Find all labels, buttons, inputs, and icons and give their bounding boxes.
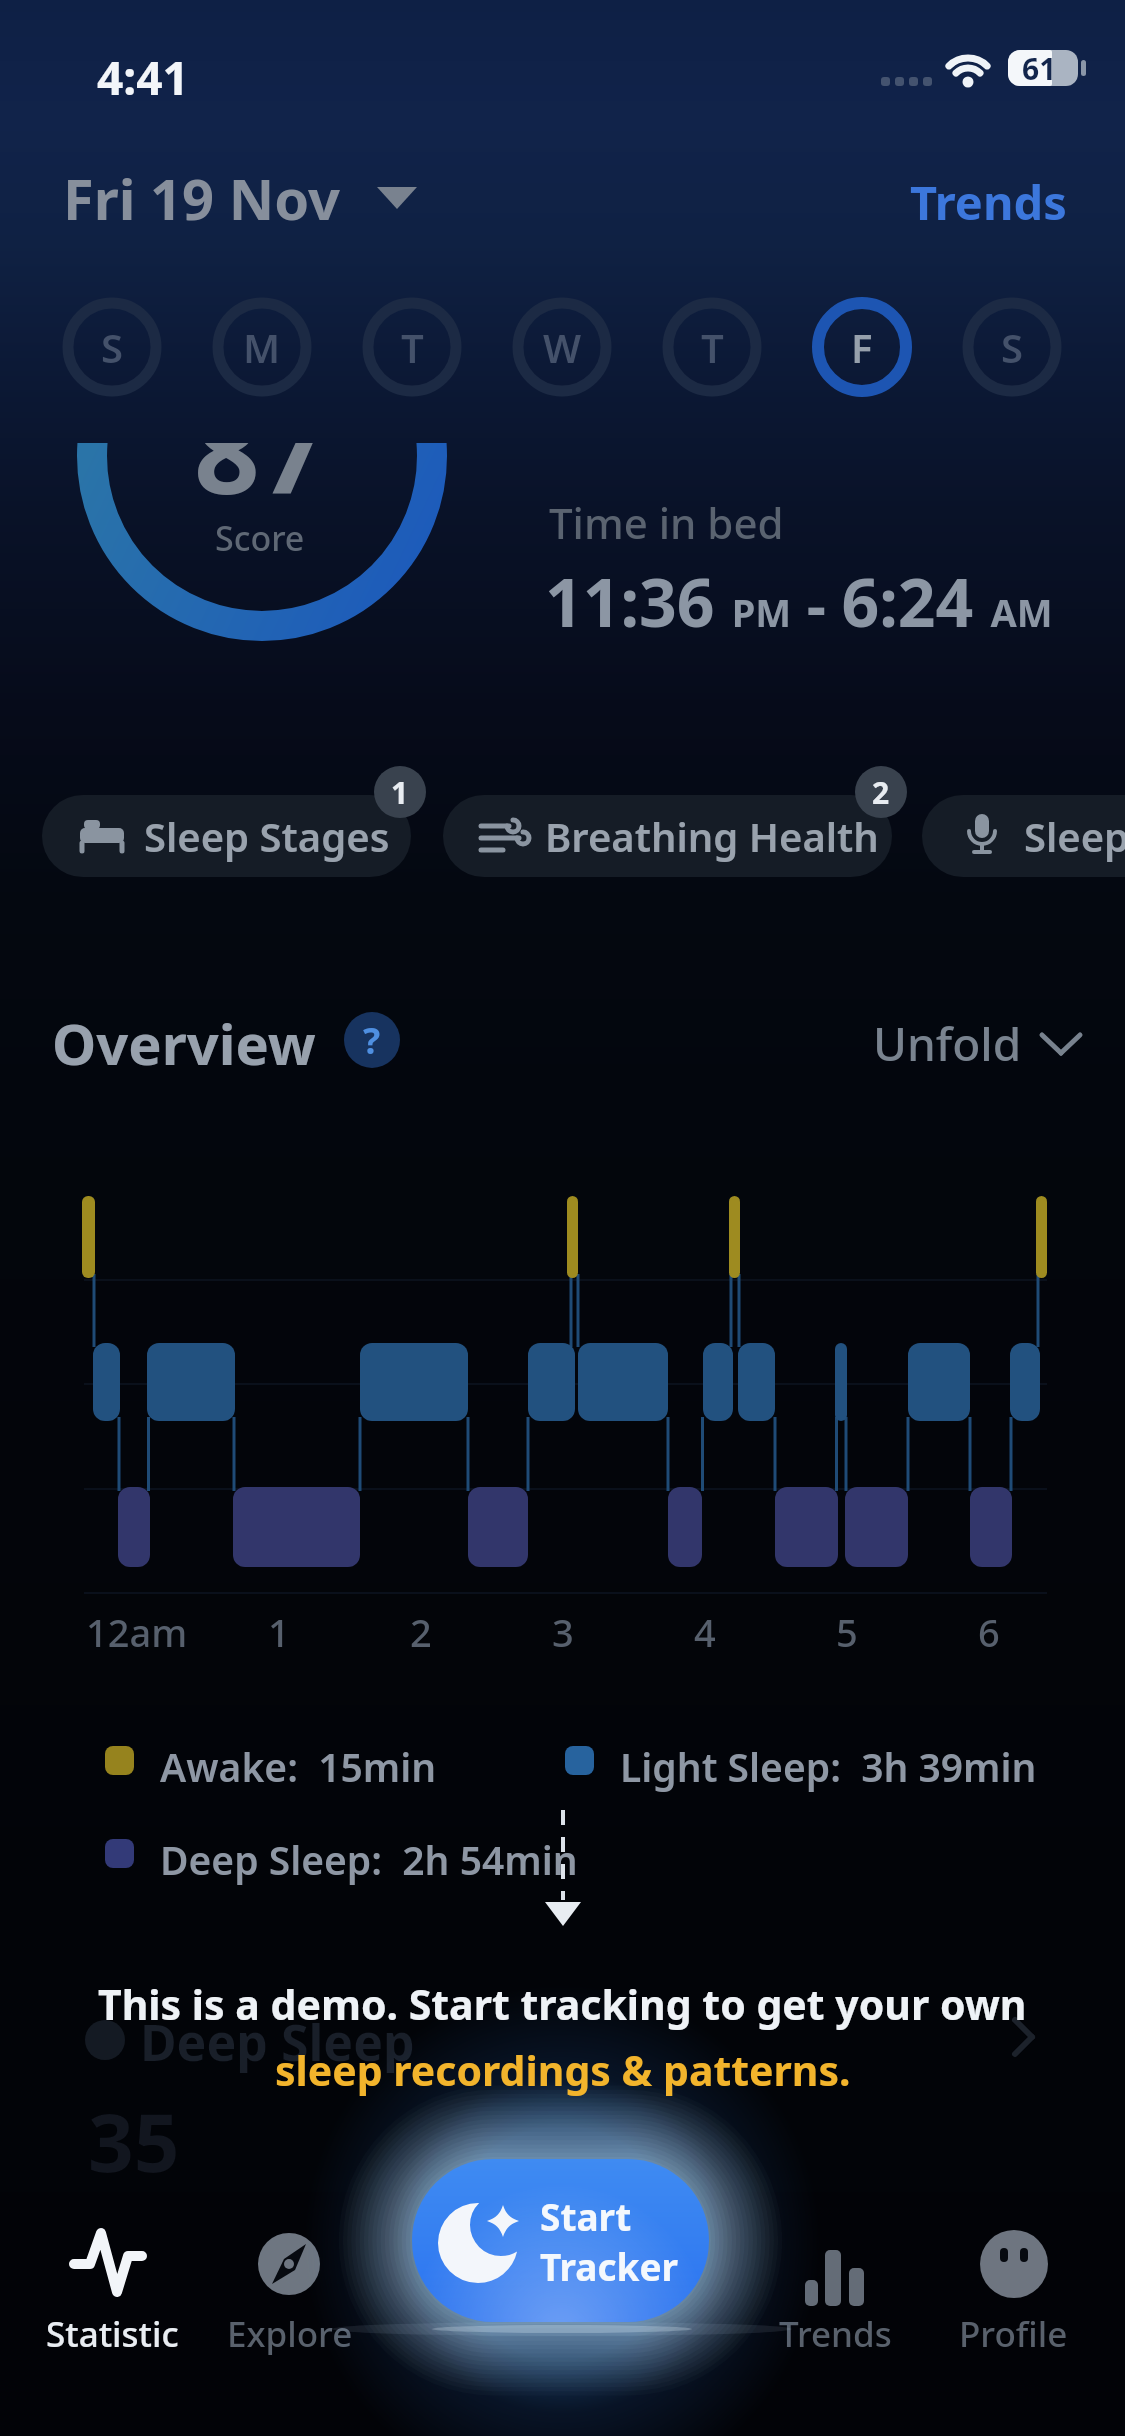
staticText: 5 xyxy=(836,1606,858,1658)
staticText: This is a demo. Start tracking to get yo… xyxy=(98,1976,1027,2032)
staticText: 2 xyxy=(872,772,890,813)
staticText: Deep Sleep xyxy=(140,2008,415,2076)
staticText: S xyxy=(1001,320,1023,374)
button[interactable]: Trends xyxy=(0,0,157,64)
staticText: ? xyxy=(363,1016,381,1065)
button[interactable]: Breathing Health xyxy=(443,795,892,877)
staticText: sleep recordings & patterns. xyxy=(275,2042,851,2098)
staticText: Sleep Stages xyxy=(144,809,390,863)
staticText: T xyxy=(401,320,424,374)
staticText: 35 xyxy=(88,2086,180,2195)
staticText: Statistic xyxy=(46,2310,179,2358)
staticText: Trends xyxy=(779,2310,892,2358)
button[interactable]: S xyxy=(62,297,162,397)
staticText: Tracker xyxy=(540,2241,679,2291)
button[interactable]: W xyxy=(512,297,612,397)
button[interactable]: Fri 19 Nov xyxy=(63,160,417,236)
staticText: 4:41 xyxy=(97,46,189,109)
button[interactable]: S xyxy=(962,297,1062,397)
button[interactable]: Statistic xyxy=(40,2220,185,2360)
staticText: Fri 19 Nov xyxy=(63,160,341,236)
button[interactable]: Unfold xyxy=(873,1012,1082,1075)
staticText: 6 xyxy=(978,1606,1000,1658)
staticText: Start xyxy=(540,2191,632,2241)
button[interactable]: Profile xyxy=(941,2220,1086,2360)
staticText: 12am xyxy=(86,1606,188,1658)
staticText: 1 xyxy=(268,1606,290,1658)
button[interactable]: Sleep Stages xyxy=(42,795,411,877)
staticText: Breathing Health xyxy=(545,809,879,863)
staticText: S xyxy=(101,320,123,374)
staticText: W xyxy=(543,320,582,374)
staticText: Awake: 15min xyxy=(160,1740,437,1793)
button[interactable]: T xyxy=(662,297,762,397)
staticText: 2 xyxy=(410,1606,432,1658)
staticText: 87 xyxy=(194,443,326,528)
staticText: T xyxy=(701,320,724,374)
staticText: Light Sleep: 3h 39min xyxy=(620,1740,1037,1793)
staticText: 4 xyxy=(694,1606,716,1658)
staticText: F xyxy=(851,320,873,374)
button[interactable]: ? xyxy=(344,1012,400,1068)
staticText: Profile xyxy=(959,2310,1068,2358)
staticText: Score xyxy=(215,515,305,561)
staticText: Deep Sleep: 2h 54min xyxy=(160,1833,578,1886)
button[interactable]: Explore xyxy=(217,2220,362,2360)
staticText: 3 xyxy=(552,1606,574,1658)
button[interactable]: F xyxy=(812,297,912,397)
button[interactable]: Sleep Note xyxy=(922,795,1125,877)
staticText: Time in bed xyxy=(549,494,784,551)
button[interactable]: Start xyxy=(412,2159,709,2322)
staticText: 1 xyxy=(391,772,409,813)
staticText: Unfold xyxy=(873,1012,1022,1075)
staticText: 11:36 PM - 6:24 AM xyxy=(545,556,1053,646)
button[interactable]: M xyxy=(212,297,312,397)
staticText: Explore xyxy=(227,2310,353,2358)
staticText: Sleep Note xyxy=(1024,809,1125,863)
button[interactable]: T xyxy=(362,297,462,397)
staticText: M xyxy=(243,320,281,374)
staticText: 61 xyxy=(1022,48,1057,89)
button[interactable]: Trends xyxy=(763,2220,908,2360)
staticText: Overview xyxy=(52,1005,316,1081)
